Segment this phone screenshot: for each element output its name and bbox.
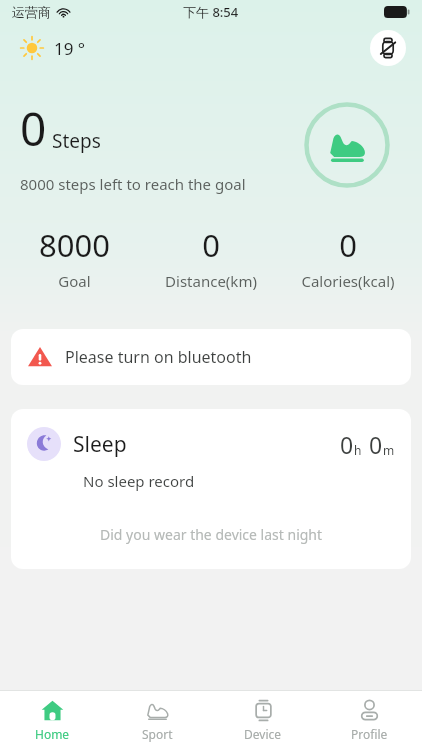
button[interactable]: Steps detail — [304, 102, 390, 188]
staticText: Device — [244, 726, 282, 742]
button[interactable]: Sport — [105, 691, 210, 750]
staticText: Sport — [142, 726, 173, 742]
staticText: Please turn on bluetooth — [65, 346, 252, 368]
staticText: 下午 8:54 — [183, 3, 239, 21]
staticText: 8000 — [39, 224, 110, 266]
staticText: 运营商 — [12, 4, 51, 20]
staticText: No sleep record — [83, 471, 195, 491]
staticText: Calories(kcal) — [301, 271, 395, 291]
staticText: 0 — [202, 224, 220, 266]
button[interactable]: Home — [0, 691, 105, 750]
staticText: Did you wear the device last night — [100, 525, 323, 544]
button[interactable]: 19 ° — [20, 36, 86, 60]
staticText: h — [354, 442, 362, 458]
staticText: Home — [35, 726, 70, 742]
button[interactable]: Please turn on bluetooth — [11, 329, 411, 385]
staticText: 0 — [340, 429, 354, 460]
button[interactable]: Profile — [316, 691, 422, 750]
staticText: 19 ° — [54, 37, 86, 60]
staticText: Sleep — [73, 430, 127, 459]
staticText: 8000 steps left to reach the goal — [20, 174, 246, 194]
button[interactable]: Device disconnected — [370, 30, 406, 66]
staticText: Profile — [351, 726, 388, 742]
staticText: Steps — [52, 128, 101, 154]
button[interactable]: Sleep — [11, 409, 411, 569]
button[interactable]: 0 — [142, 222, 279, 293]
staticText: Distance(km) — [165, 271, 257, 291]
button[interactable]: Device — [210, 691, 316, 750]
staticText: 0 — [20, 97, 47, 160]
staticText: 0 — [369, 429, 383, 460]
button[interactable]: 0 — [279, 222, 416, 293]
staticText: 0 — [339, 224, 357, 266]
staticText: Goal — [58, 271, 91, 291]
button[interactable]: 8000 — [6, 222, 142, 293]
staticText: m — [383, 442, 395, 458]
